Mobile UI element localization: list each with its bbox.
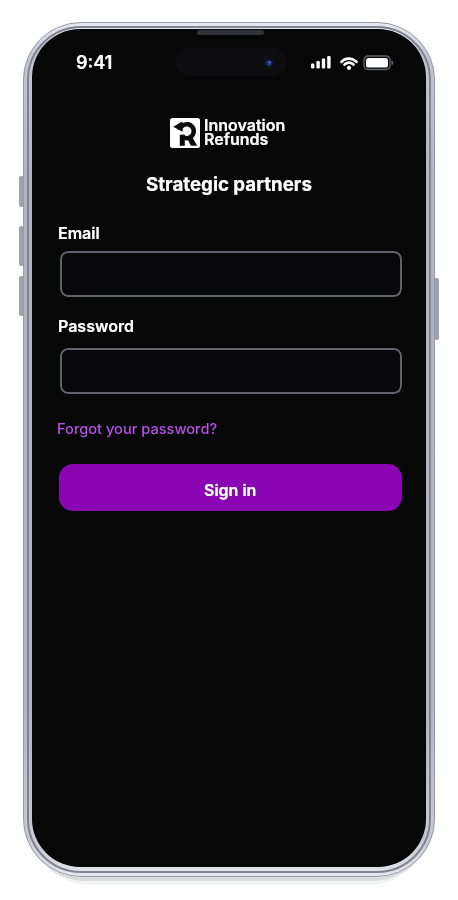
staticText: Email	[58, 223, 100, 242]
staticText: Strategic partners	[146, 173, 312, 196]
staticText: Password	[58, 316, 134, 335]
staticText: Refunds	[204, 129, 269, 148]
button[interactable]: Forgot your password?	[57, 420, 218, 438]
button[interactable]	[60, 348, 402, 394]
staticText: Innovation	[204, 115, 286, 134]
button[interactable]: Sign in	[59, 464, 402, 511]
staticText: 9:41	[76, 52, 113, 74]
staticText: Sign in	[204, 480, 257, 499]
staticText: Forgot your password?	[57, 420, 218, 438]
button[interactable]	[60, 251, 402, 297]
